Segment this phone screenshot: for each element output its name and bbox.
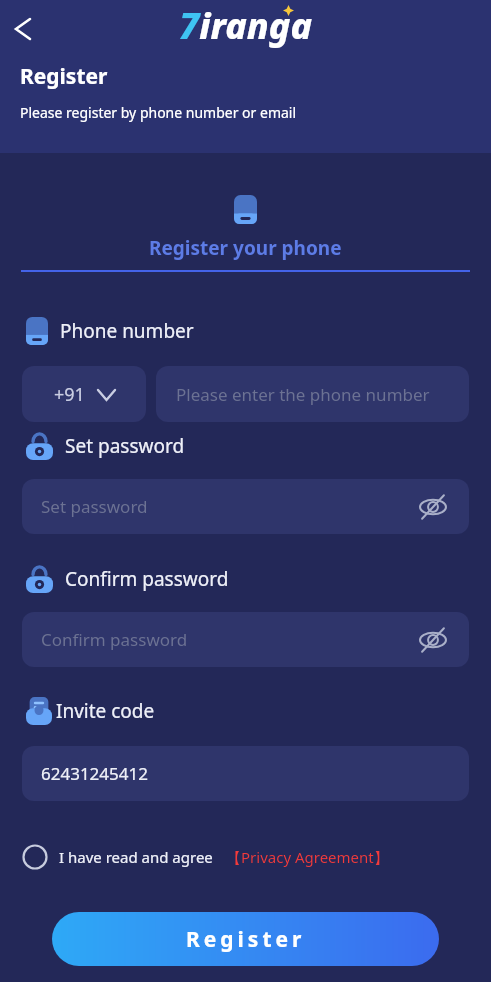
staticText: Set password	[65, 433, 185, 459]
button[interactable]: 【Privacy Agreement】	[226, 847, 389, 867]
staticText: Phone number	[60, 318, 194, 344]
button[interactable]: 62431245412	[22, 746, 469, 801]
button[interactable]: Please enter the phone number	[156, 366, 469, 422]
button[interactable]: I have read and agree	[22, 844, 389, 870]
staticText: Invite code	[56, 698, 155, 724]
button[interactable]	[420, 627, 446, 653]
staticText: 62431245412	[41, 762, 148, 785]
button[interactable]	[6, 12, 40, 46]
staticText: I have read and agree	[59, 847, 213, 867]
staticText: Set password	[41, 495, 148, 518]
staticText: Confirm password	[41, 628, 188, 651]
staticText: Please enter the phone number	[176, 383, 430, 406]
button[interactable]	[420, 494, 446, 520]
staticText: Please register by phone number or email	[20, 103, 297, 122]
staticText: Register	[186, 925, 306, 954]
button[interactable]: Register	[52, 912, 439, 966]
button[interactable]: Confirm password	[22, 612, 469, 667]
staticText: +91	[54, 382, 85, 407]
staticText: Register	[20, 62, 108, 91]
button[interactable]: Register your phone	[149, 195, 342, 261]
staticText: Confirm password	[65, 566, 229, 592]
button[interactable]: +91	[22, 366, 146, 422]
staticText: Register your phone	[149, 235, 342, 261]
staticText: 7iranga	[179, 1, 313, 50]
button[interactable]: Set password	[22, 479, 469, 534]
